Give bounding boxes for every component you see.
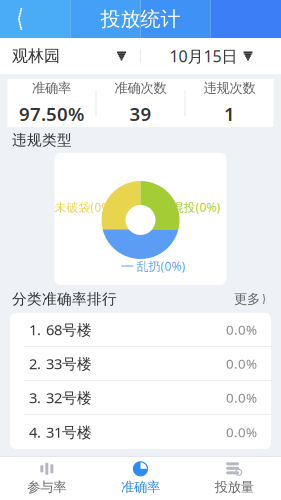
staticText: 乱扔(0%) [136,258,185,274]
button[interactable]: 投放量 [187,457,281,500]
staticText: 0.0% [226,423,257,441]
staticText: 违规次数 [203,80,255,96]
button[interactable]: 4. [10,415,271,449]
button[interactable]: Back [0,0,38,38]
button[interactable]: 2. [10,347,271,381]
staticText: 参与率 [27,479,66,495]
button[interactable]: 准确率 [94,457,187,500]
staticText: 97.50% [19,101,84,126]
staticText: 33号楼 [46,354,92,373]
staticText: 准确次数 [114,80,166,96]
staticText: 投放量 [215,479,254,495]
staticText: 31号楼 [46,422,92,442]
staticText: 3. [29,388,41,407]
staticText: 未破袋(0%) [54,199,115,215]
staticText: 更多 [234,291,260,307]
staticText: 2. [29,354,41,373]
staticText: 0.0% [226,389,257,406]
staticText: 准确率 [121,479,160,495]
staticText: 观林园 [12,46,60,66]
staticText: 10月15日 [169,45,237,67]
staticText: 分类准确率排行 [12,290,117,308]
button[interactable]: 更多 [230,285,269,313]
staticText: 4. [29,422,41,442]
staticText: 混投(0%) [171,199,220,215]
staticText: 违规类型 [12,131,72,149]
staticText: 0.0% [226,355,257,372]
button[interactable]: 观林园 [0,38,140,74]
button[interactable]: 参与率 [0,457,94,500]
staticText: 1. [29,320,41,339]
staticText: 68号楼 [46,320,92,339]
staticText: 1 [224,101,235,126]
button[interactable]: 1. [10,313,271,347]
staticText: 32号楼 [46,388,92,407]
staticText: 0.0% [226,321,257,338]
staticText: 准确率 [32,80,71,96]
button[interactable]: 10月15日 [141,38,281,74]
staticText: 39 [129,101,151,126]
button[interactable]: 3. [10,381,271,415]
staticText: 投放统计 [100,7,180,31]
